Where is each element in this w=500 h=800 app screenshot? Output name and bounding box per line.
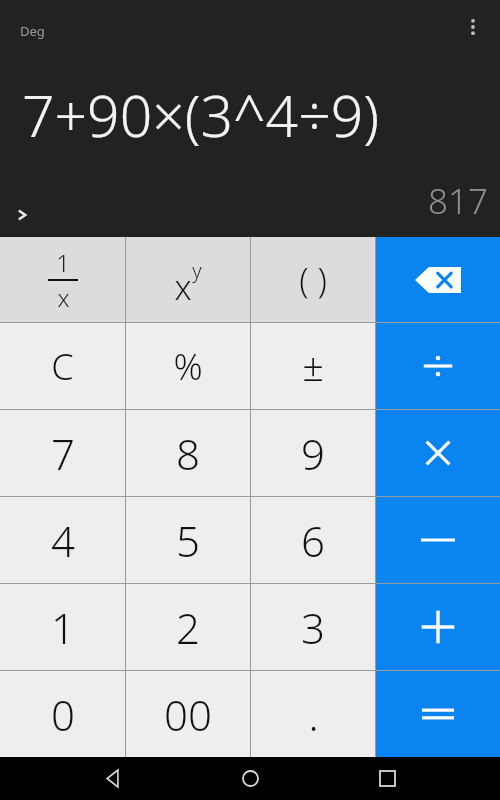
button[interactable]: 0 xyxy=(0,671,125,757)
button[interactable]: Deg xyxy=(20,22,45,40)
button[interactable]: 3 xyxy=(251,584,375,670)
staticText: 3 xyxy=(301,599,325,656)
staticText: x xyxy=(174,264,192,310)
button[interactable]: 8 xyxy=(126,410,250,496)
button[interactable]: 6 xyxy=(251,497,375,583)
button[interactable]: operator xyxy=(376,410,500,496)
button[interactable]: 1 xyxy=(0,584,125,670)
button[interactable]: Divide xyxy=(376,323,500,409)
staticText: 6 xyxy=(301,512,325,569)
button[interactable]: . xyxy=(251,671,375,757)
staticText: Deg xyxy=(20,22,45,40)
button[interactable]: 5 xyxy=(126,497,250,583)
staticText: 5 xyxy=(176,512,200,569)
button[interactable]: C xyxy=(0,323,125,409)
staticText: 8 xyxy=(176,425,200,482)
button[interactable]: % xyxy=(126,323,250,409)
button[interactable]: operator xyxy=(376,497,500,583)
staticText: 2 xyxy=(176,599,200,656)
staticText: 7 xyxy=(51,425,75,482)
staticText: y xyxy=(192,257,202,284)
button[interactable]: ( ) xyxy=(251,237,375,322)
staticText: . xyxy=(308,686,319,743)
button[interactable]: Home xyxy=(226,757,274,800)
button[interactable]: Expand history xyxy=(2,195,42,235)
staticText: % xyxy=(173,342,203,391)
staticText: 4 xyxy=(51,512,75,569)
staticText: 7+90×(3^4÷9) xyxy=(22,76,380,154)
button[interactable]: 9 xyxy=(251,410,375,496)
staticText: 0 xyxy=(51,686,75,743)
staticText: C xyxy=(51,342,74,391)
button[interactable]: More options xyxy=(452,6,494,48)
staticText: 1 xyxy=(51,599,75,656)
staticText: ± xyxy=(302,340,324,392)
button[interactable]: Back xyxy=(89,757,137,800)
button[interactable]: 7 xyxy=(0,410,125,496)
button[interactable]: one over x xyxy=(0,237,125,322)
button[interactable]: 4 xyxy=(0,497,125,583)
staticText: x xyxy=(57,281,70,314)
staticText: 817 xyxy=(428,177,488,225)
button[interactable]: 2 xyxy=(126,584,250,670)
staticText: 1 xyxy=(56,246,70,279)
button[interactable]: x xyxy=(126,237,250,322)
staticText: 9 xyxy=(301,425,325,482)
button[interactable]: operator xyxy=(376,584,500,670)
button[interactable]: Plus minus xyxy=(251,323,375,409)
staticText: ( ) xyxy=(299,257,327,303)
staticText: 00 xyxy=(164,686,212,743)
button[interactable]: operator xyxy=(376,671,500,757)
button[interactable]: Recent apps xyxy=(363,757,411,800)
button[interactable]: Backspace xyxy=(376,237,500,322)
button[interactable]: 00 xyxy=(126,671,250,757)
